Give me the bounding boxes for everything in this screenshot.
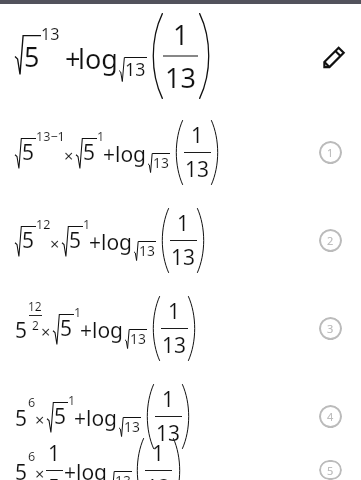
staticText: 13 [139,241,155,260]
staticText: 5 [15,316,28,345]
staticText: 13 [115,471,131,480]
staticText: 1 [173,16,189,53]
staticText: log [92,316,124,345]
staticText: 13−1 [36,128,65,145]
staticText: 5 [327,463,334,478]
staticText: 1 [83,216,91,233]
staticText: log [78,40,118,77]
staticText: 13 [153,153,169,172]
staticText: 13 [162,331,187,360]
staticText: 5 [15,404,28,433]
staticText: 1 [74,304,82,321]
staticText: 2 [32,317,39,333]
staticText: log [101,228,133,257]
staticText: 13 [165,59,196,96]
staticText: 12 [28,298,42,314]
staticText: log [115,140,147,169]
staticText: + [103,140,116,169]
staticText: 5 [22,226,35,255]
staticText: × [35,462,45,480]
staticText: × [35,408,45,430]
staticText: 1 [97,128,105,145]
staticText: 5 [22,138,35,167]
button[interactable]: 5 [0,284,361,372]
staticText: 6 [28,448,36,465]
button[interactable]: 5 [0,108,361,196]
button[interactable]: Edit [315,37,353,75]
staticText: log [76,458,108,480]
staticText: 13 [171,243,196,272]
staticText: 3 [327,321,334,336]
staticText: 5 [54,402,67,431]
staticText: 5 [48,473,61,480]
button[interactable]: 3 [319,317,342,340]
staticText: + [80,316,93,345]
staticText: + [89,228,102,257]
button[interactable]: 2 [319,229,342,252]
staticText: 5 [24,38,40,75]
staticText: 6 [28,394,36,411]
staticText: + [64,458,77,480]
staticText: 5 [69,226,82,255]
staticText: 13 [125,57,146,81]
button[interactable]: 5 [0,372,361,460]
staticText: 5 [60,314,73,343]
staticText: 13 [156,419,181,448]
button[interactable]: 5 [0,460,361,480]
button[interactable]: 1 [319,141,342,164]
button[interactable]: 5 [0,4,361,108]
staticText: × [64,144,74,166]
button[interactable]: 5 [319,460,342,480]
staticText: × [50,232,60,254]
staticText: 13 [130,329,146,348]
staticText: 13 [146,473,171,480]
button[interactable]: 4 [319,405,342,428]
staticText: × [41,320,51,342]
staticText: 1 [162,385,175,414]
staticText: 13 [41,23,60,45]
staticText: 1 [191,121,204,150]
staticText: 1 [152,439,165,468]
staticText: 4 [327,409,334,424]
button[interactable]: 5 [0,196,361,284]
staticText: 2 [327,233,334,248]
staticText: log [86,404,118,433]
staticText: + [65,40,81,77]
staticText: 5 [83,138,96,167]
staticText: 1 [327,145,334,160]
staticText: + [74,404,87,433]
staticText: 1 [48,439,61,468]
staticText: 5 [15,458,28,480]
staticText: 1 [177,209,190,238]
staticText: 13 [124,417,140,436]
staticText: 13 [185,155,210,184]
staticText: 1 [68,392,76,409]
staticText: 12 [36,216,51,233]
staticText: 1 [168,297,181,326]
